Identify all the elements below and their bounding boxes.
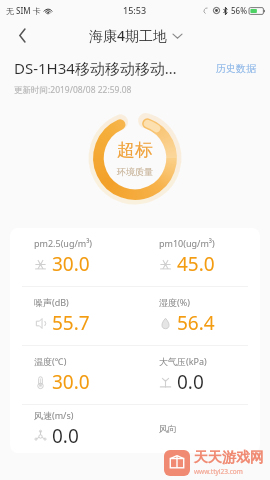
button[interactable]: 风向 bbox=[135, 405, 260, 453]
button[interactable]: pm2.5(ug/m³) bbox=[10, 228, 135, 286]
staticText: 天天游戏网 bbox=[194, 449, 264, 467]
staticText: 0.0 bbox=[52, 423, 79, 449]
button[interactable]: Back bbox=[10, 23, 34, 47]
staticText: 30.0 bbox=[52, 369, 90, 395]
staticText: 环境质量 bbox=[117, 166, 153, 177]
button[interactable]: pm10(ug/m³) bbox=[135, 228, 260, 286]
button[interactable]: 大气压(kPa) bbox=[135, 346, 260, 404]
staticText: 45.0 bbox=[177, 251, 215, 277]
staticText: pm2.5(ug/m³) bbox=[34, 237, 93, 249]
staticText: 海康4期工地 bbox=[89, 26, 168, 45]
staticText: 湿度(%) bbox=[159, 296, 190, 308]
staticText: 大气压(kPa) bbox=[159, 355, 207, 367]
staticText: 15:53 bbox=[123, 4, 147, 16]
button[interactable]: 噪声(dB) bbox=[10, 287, 135, 345]
button[interactable]: 历史数据 bbox=[212, 60, 260, 77]
staticText: 历史数据 bbox=[216, 62, 256, 75]
staticText: 温度(℃) bbox=[34, 355, 67, 367]
button[interactable]: 温度(℃) bbox=[10, 346, 135, 404]
staticText: 55.7 bbox=[52, 310, 90, 336]
button[interactable]: 风速(m/s) bbox=[10, 405, 135, 453]
staticText: 0.0 bbox=[177, 369, 204, 395]
staticText: 56.4 bbox=[177, 310, 215, 336]
staticText: 风速(m/s) bbox=[34, 409, 74, 421]
staticText: 风向 bbox=[159, 423, 177, 434]
staticText: DS-1H34移动移动移动… bbox=[14, 58, 206, 78]
staticText: 超标 bbox=[117, 139, 153, 162]
button[interactable]: 湿度(%) bbox=[135, 287, 260, 345]
staticText: 30.0 bbox=[52, 251, 90, 277]
staticText: www.ttyl23.com bbox=[194, 467, 243, 476]
staticText: 无 SIM 卡 bbox=[6, 5, 41, 16]
staticText: pm10(ug/m³) bbox=[159, 237, 215, 249]
staticText: 更新时间:2019/08/08 22:59.08 bbox=[14, 84, 132, 96]
staticText: 56% bbox=[231, 5, 247, 16]
button[interactable]: 海康4期工地 bbox=[89, 26, 182, 45]
staticText: 噪声(dB) bbox=[34, 296, 69, 308]
